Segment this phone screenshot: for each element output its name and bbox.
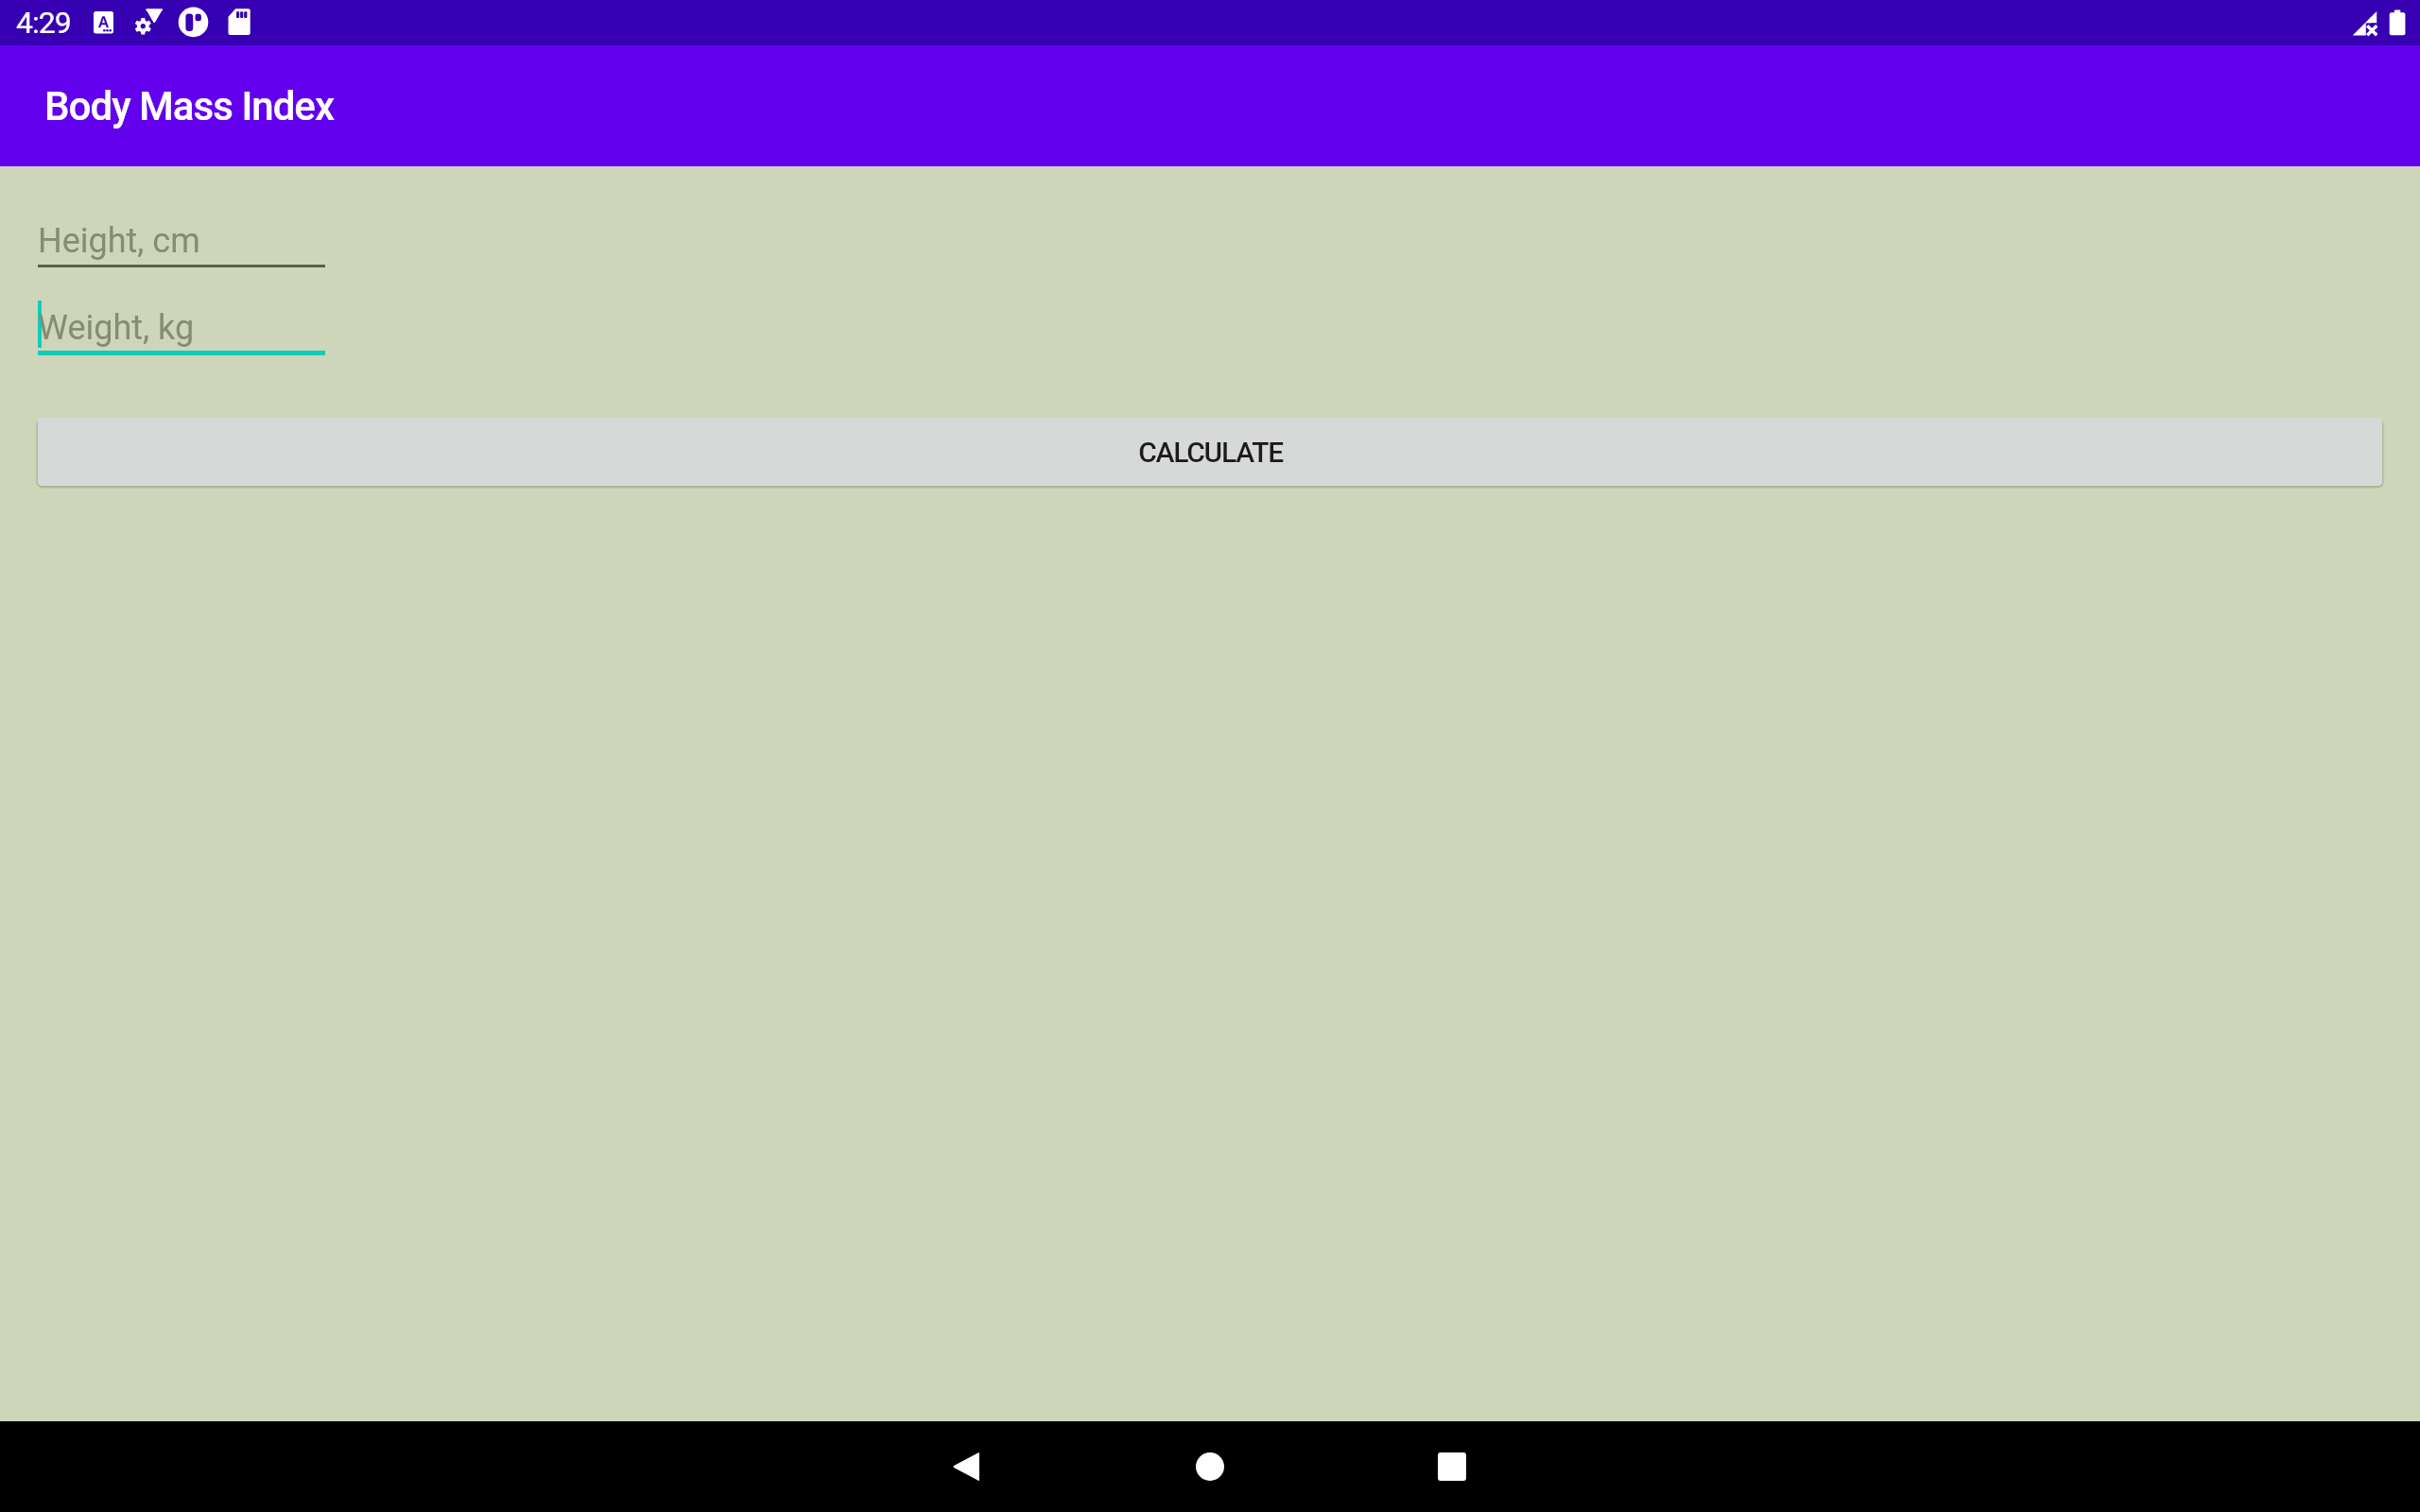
staticText: Body Mass Index: [44, 83, 335, 129]
staticText: 4:29: [16, 5, 71, 41]
button[interactable]: Back: [921, 1421, 1011, 1512]
staticText: Weight, kg: [38, 308, 195, 348]
button[interactable]: Height, cm: [38, 221, 325, 278]
button[interactable]: Weight, kg: [38, 308, 325, 365]
button[interactable]: Home: [1165, 1421, 1255, 1512]
staticText: CALCULATE: [1138, 436, 1283, 469]
button[interactable]: CALCULATE: [38, 418, 2382, 486]
staticText: Height, cm: [38, 221, 200, 261]
button[interactable]: Recent apps: [1407, 1421, 1497, 1512]
